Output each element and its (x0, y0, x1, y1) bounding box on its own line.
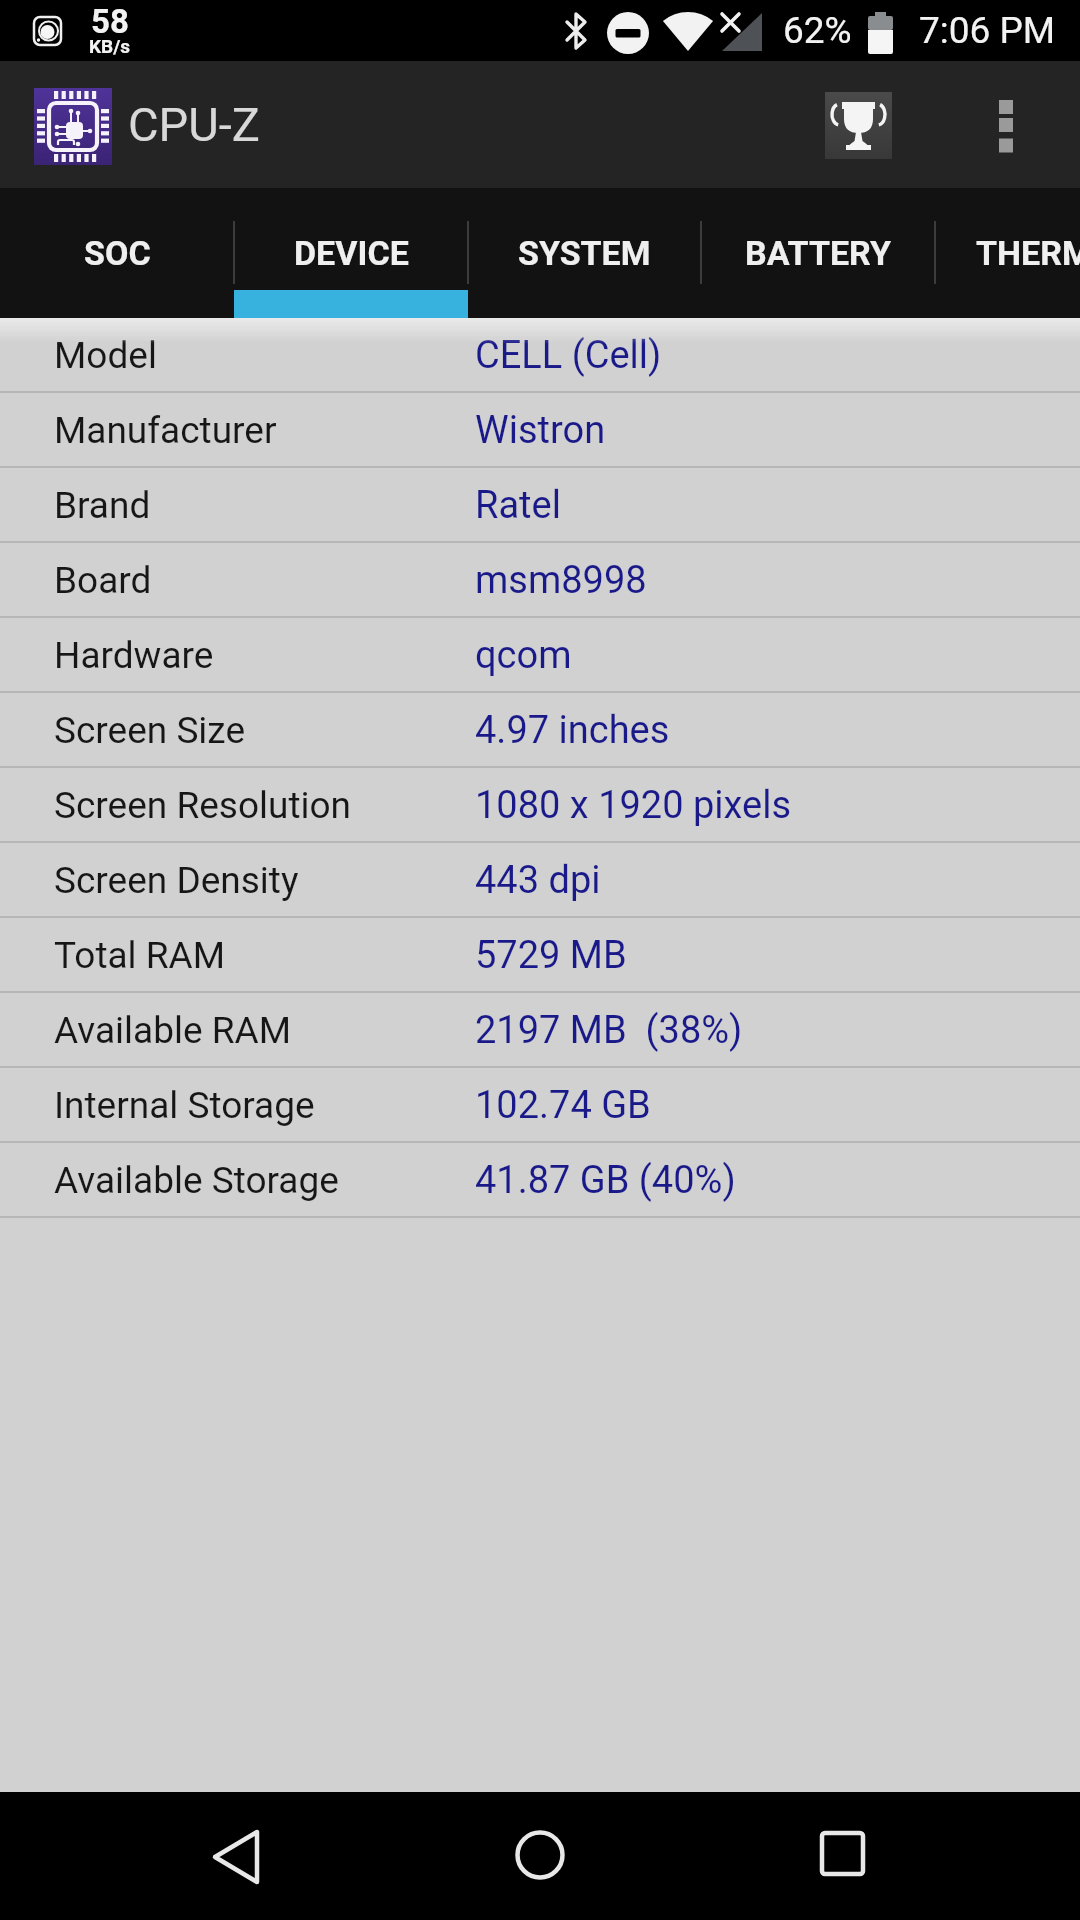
button[interactable]: Available RAM (0, 993, 1080, 1068)
button[interactable]: SOC (0, 188, 234, 318)
staticText: Available RAM (54, 1009, 291, 1052)
button[interactable]: DEVICE (234, 188, 468, 318)
button[interactable]: Total RAM (0, 918, 1080, 993)
staticText: BATTERY (745, 233, 891, 273)
staticText: 7:06 PM (919, 9, 1056, 52)
staticText: Screen Density (54, 859, 299, 902)
button[interactable]: Manufacturer (0, 393, 1080, 468)
staticText: CELL (Cell) (475, 333, 662, 378)
button[interactable]: Screen Resolution (0, 768, 1080, 843)
staticText: Board (54, 559, 152, 602)
button[interactable]: BATTERY (701, 188, 935, 318)
staticText: 102.74 GB (475, 1083, 651, 1128)
button[interactable]: Board (0, 543, 1080, 618)
staticText: CPU-Z (128, 97, 260, 152)
staticText: Ratel (475, 483, 561, 528)
staticText: SYSTEM (518, 233, 651, 273)
staticText: 58 (91, 2, 129, 39)
staticText: 41.87 GB (40%) (475, 1158, 736, 1203)
staticText: 5729 MB (475, 933, 627, 978)
button[interactable]: Screen Density (0, 843, 1080, 918)
button[interactable] (792, 1824, 892, 1888)
staticText: Wistron (475, 408, 606, 453)
staticText: Available Storage (54, 1159, 339, 1202)
staticText: Model (54, 334, 157, 377)
button[interactable]: Model (0, 318, 1080, 393)
staticText: Hardware (54, 634, 214, 677)
staticText: Internal Storage (54, 1084, 315, 1127)
staticText: DEVICE (294, 233, 409, 273)
staticText: SOC (84, 233, 151, 273)
staticText: Brand (54, 484, 151, 527)
staticText: Screen Resolution (54, 784, 352, 827)
button[interactable]: Hardware (0, 618, 1080, 693)
button[interactable]: Brand (0, 468, 1080, 543)
staticText: Manufacturer (54, 409, 277, 452)
button[interactable]: Available Storage (0, 1143, 1080, 1218)
button[interactable] (490, 1824, 590, 1888)
staticText: 62% (783, 9, 852, 52)
staticText: Total RAM (54, 934, 226, 977)
staticText: Screen Size (54, 709, 246, 752)
staticText: 443 dpi (475, 858, 601, 903)
staticText: 1080 x 1920 pixels (475, 783, 792, 828)
button[interactable]: SYSTEM (467, 188, 701, 318)
staticText: KB/s (89, 35, 131, 57)
staticText: THERMAL (976, 233, 1080, 273)
staticText: qcom (475, 633, 572, 678)
staticText: msm8998 (475, 558, 647, 603)
button[interactable] (988, 90, 1024, 160)
button[interactable] (185, 1832, 285, 1896)
button[interactable]: THERMAL (934, 188, 1080, 318)
button[interactable]: Internal Storage (0, 1068, 1080, 1143)
staticText: 4.97 inches (475, 708, 670, 753)
button[interactable]: Screen Size (0, 693, 1080, 768)
button[interactable] (825, 92, 892, 159)
staticText: 2197 MB (38%) (475, 1008, 743, 1053)
